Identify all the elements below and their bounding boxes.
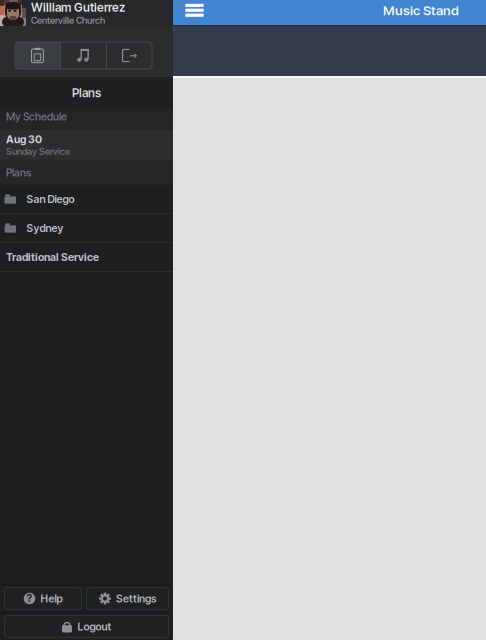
staticText: Logout <box>77 620 111 633</box>
button[interactable]: Present <box>107 42 152 69</box>
button[interactable]: Plans <box>15 42 60 69</box>
staticText: Sunday Service <box>6 146 70 157</box>
staticText: Traditional Service <box>6 250 99 263</box>
staticText: ? <box>26 591 32 604</box>
button[interactable]: ? <box>4 587 81 609</box>
staticText: William Gutierrez <box>31 0 125 15</box>
button[interactable]: Settings <box>86 587 168 609</box>
staticText: Aug 30 <box>6 133 42 146</box>
button[interactable]: Aug 30 <box>0 130 173 160</box>
button[interactable]: Traditional Service <box>0 243 173 272</box>
staticText: Settings <box>116 592 156 605</box>
staticText: Help <box>40 592 62 605</box>
staticText: Sydney <box>26 221 63 234</box>
button[interactable]: William Gutierrez <box>0 0 173 26</box>
button[interactable]: Menu <box>179 0 209 23</box>
staticText: San Diego <box>26 192 74 205</box>
button[interactable]: Music <box>61 42 106 69</box>
staticText: Music Stand <box>383 2 459 18</box>
button[interactable]: Sydney <box>0 214 173 243</box>
button[interactable]: San Diego <box>0 185 173 214</box>
button[interactable]: Logout <box>4 615 168 637</box>
staticText: My Schedule <box>6 110 67 123</box>
staticText: Centerville Church <box>31 15 105 26</box>
staticText: Plans <box>72 86 101 100</box>
staticText: Plans <box>6 166 31 179</box>
